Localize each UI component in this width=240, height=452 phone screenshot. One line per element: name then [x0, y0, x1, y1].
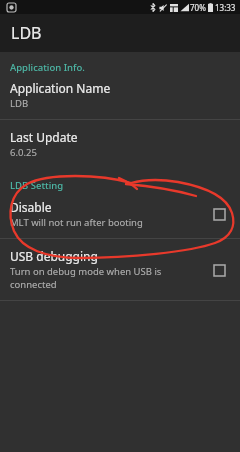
- button[interactable]: Toggle Disable: [208, 203, 230, 225]
- staticText: Turn on debug mode when USB is connected: [10, 265, 208, 291]
- button[interactable]: Last Update: [0, 129, 240, 159]
- staticText: 70%: [190, 2, 206, 13]
- staticText: 13:33: [215, 2, 236, 13]
- button[interactable]: Disable: [0, 199, 240, 229]
- staticText: MLT will not run after booting: [10, 216, 143, 229]
- staticText: USB debugging: [10, 248, 98, 264]
- staticText: Last Update: [10, 129, 78, 145]
- staticText: Disable: [10, 199, 52, 215]
- button[interactable]: Toggle USB debugging: [208, 259, 230, 281]
- staticText: 6.0.25: [10, 146, 37, 159]
- staticText: Application Info.: [10, 61, 85, 74]
- staticText: LDB Setting: [10, 179, 64, 192]
- staticText: LDB: [10, 97, 29, 110]
- staticText: Application Name: [10, 80, 111, 96]
- staticText: LDB: [11, 22, 42, 44]
- button[interactable]: Application Name: [0, 80, 240, 110]
- button[interactable]: USB debugging: [0, 248, 240, 291]
